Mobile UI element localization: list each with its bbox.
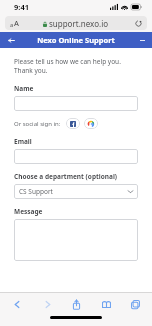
staticText: Nexo Online Support [37,35,115,45]
button[interactable] [14,219,138,261]
staticText: 9:41 [14,2,29,12]
staticText: Email [14,137,32,146]
staticText: Message [14,207,43,216]
staticText: A [14,18,19,28]
button[interactable] [14,149,138,164]
button[interactable]: Minimize [137,35,147,45]
button[interactable]: Bookmarks [95,293,117,315]
button[interactable]: Sign in with Facebook [66,118,80,129]
staticText: Name [14,84,34,93]
staticText: Choose a department (optional) [14,172,118,181]
button[interactable]: Back [6,293,28,315]
button[interactable]: Forward [36,293,58,315]
button[interactable]: Reload page [135,20,142,27]
staticText: a [10,21,14,28]
staticText: support.nexo.io [49,18,109,29]
button[interactable]: Tabs [124,293,146,315]
button[interactable]: Back [6,35,16,45]
button[interactable]: CS Support [14,184,138,199]
button[interactable]: Share [65,293,87,315]
button[interactable]: Sign in with Google [84,118,98,129]
button[interactable] [14,96,138,111]
staticText: CS Support [19,187,53,196]
staticText: Or social sign in: [14,120,61,128]
staticText: Please tell us how we can help you. Than… [14,57,138,75]
button[interactable]: Text size options [10,18,19,28]
button[interactable]: Text size options [5,16,147,30]
